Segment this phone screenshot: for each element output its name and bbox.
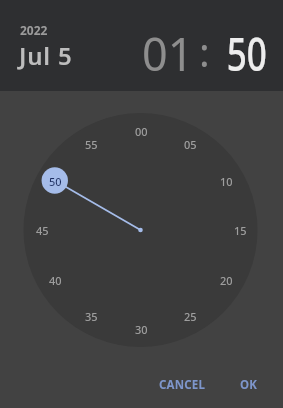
- button[interactable]: 50: [227, 23, 267, 84]
- staticText: 45: [36, 223, 49, 238]
- button[interactable]: 30: [111, 317, 171, 341]
- button[interactable]: 35: [61, 304, 121, 328]
- button[interactable]: 01: [142, 23, 194, 84]
- button[interactable]: 15: [210, 218, 270, 242]
- staticText: 35: [85, 309, 98, 324]
- button[interactable]: 40: [25, 268, 85, 292]
- staticText: 40: [49, 273, 62, 288]
- staticText: OK: [240, 377, 258, 393]
- button[interactable]: 45: [12, 218, 72, 242]
- staticText: 00: [135, 124, 148, 139]
- button[interactable]: 20: [196, 268, 256, 292]
- staticText: 15: [234, 223, 247, 238]
- staticText: 25: [184, 309, 197, 324]
- button[interactable]: 25: [160, 304, 220, 328]
- button[interactable]: 00: [111, 119, 171, 143]
- button[interactable]: 10: [196, 169, 256, 193]
- staticText: 05: [184, 137, 197, 152]
- staticText: 10: [220, 174, 233, 189]
- button[interactable]: Jul 5: [19, 39, 73, 72]
- staticText: 30: [135, 322, 148, 337]
- staticText: CANCEL: [159, 377, 206, 393]
- staticText: 50: [49, 174, 62, 189]
- button[interactable]: 55: [61, 132, 121, 156]
- staticText: 20: [220, 273, 233, 288]
- button[interactable]: CANCEL: [147, 370, 217, 400]
- staticText: :: [199, 24, 210, 78]
- button[interactable]: 2022: [20, 22, 48, 38]
- button[interactable]: 50: [25, 169, 85, 193]
- button[interactable]: 05: [160, 132, 220, 156]
- button[interactable]: OK: [229, 370, 269, 400]
- staticText: 55: [85, 137, 98, 152]
